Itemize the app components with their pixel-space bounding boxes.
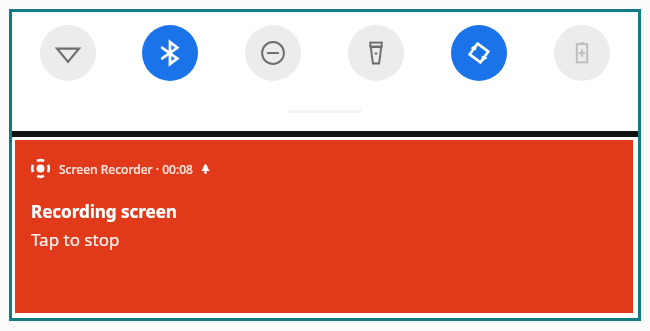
button[interactable]: Bluetooth	[142, 25, 198, 81]
button[interactable]: Auto rotate	[451, 25, 507, 81]
staticText: Screen Recorder · 00:08	[59, 161, 193, 177]
button[interactable]: Battery Saver	[554, 25, 610, 81]
staticText: Recording screen	[31, 200, 177, 223]
staticText: Tap to stop	[31, 228, 120, 251]
button[interactable]: Screen Recorder · 00:08	[15, 140, 633, 313]
button[interactable]: Flashlight	[348, 25, 404, 81]
button[interactable]: Wi-Fi	[40, 25, 96, 81]
button[interactable]: Do Not Disturb	[245, 25, 301, 81]
